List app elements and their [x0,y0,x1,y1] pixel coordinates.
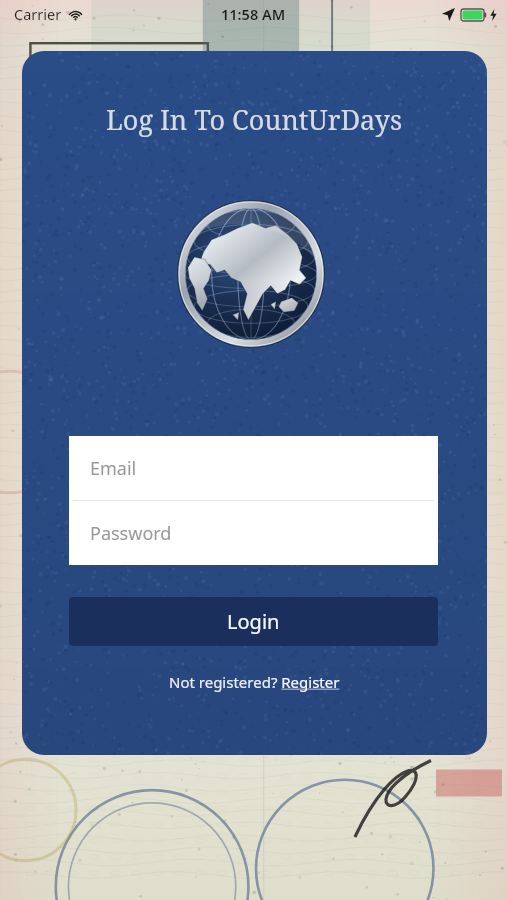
staticText: 11:58 AM [221,4,286,24]
staticText: Login [227,608,280,635]
button[interactable]: Email [69,436,438,500]
button[interactable]: Password [69,501,438,565]
staticText: Not registered? Register [169,672,340,692]
staticText: Carrier [14,4,62,24]
staticText: Log In To CountUrDays [106,101,403,138]
staticText: Email [90,456,137,481]
staticText: Password [90,521,172,546]
button[interactable]: Login [69,597,438,646]
other: CountUrDays globe logo [176,199,326,349]
button[interactable]: Not registered? Register [159,667,350,697]
